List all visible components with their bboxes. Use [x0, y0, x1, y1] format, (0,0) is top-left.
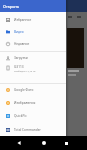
staticText: Свободно 14,79 ГБ [14, 69, 36, 72]
button[interactable]: Back [12, 136, 26, 150]
staticText: Google Фото [14, 88, 34, 92]
button[interactable]: G3113 [0, 62, 66, 74]
staticText: G3113 [14, 65, 24, 69]
staticText: Недавние [14, 42, 30, 46]
staticText: Видео [14, 30, 24, 34]
button[interactable]: QuickPic [0, 110, 66, 122]
staticText: Открыть [3, 4, 20, 9]
staticText: Изображения [14, 101, 36, 105]
button[interactable]: Избранное [0, 14, 66, 26]
button[interactable]: Изображения [0, 97, 66, 109]
staticText: Загрузки [14, 56, 28, 60]
button[interactable]: Google Фото [0, 84, 66, 96]
button[interactable]: Загрузки [0, 52, 66, 64]
button[interactable]: Total Commander [0, 124, 66, 136]
button[interactable]: Видео [0, 26, 66, 38]
staticText: QuickPic [14, 114, 27, 118]
staticText: Избранное [14, 18, 32, 22]
staticText: Total Commander [14, 128, 41, 132]
button[interactable]: Recents [59, 136, 73, 150]
button[interactable]: Недавние [0, 38, 66, 50]
button[interactable]: Home [37, 136, 51, 150]
